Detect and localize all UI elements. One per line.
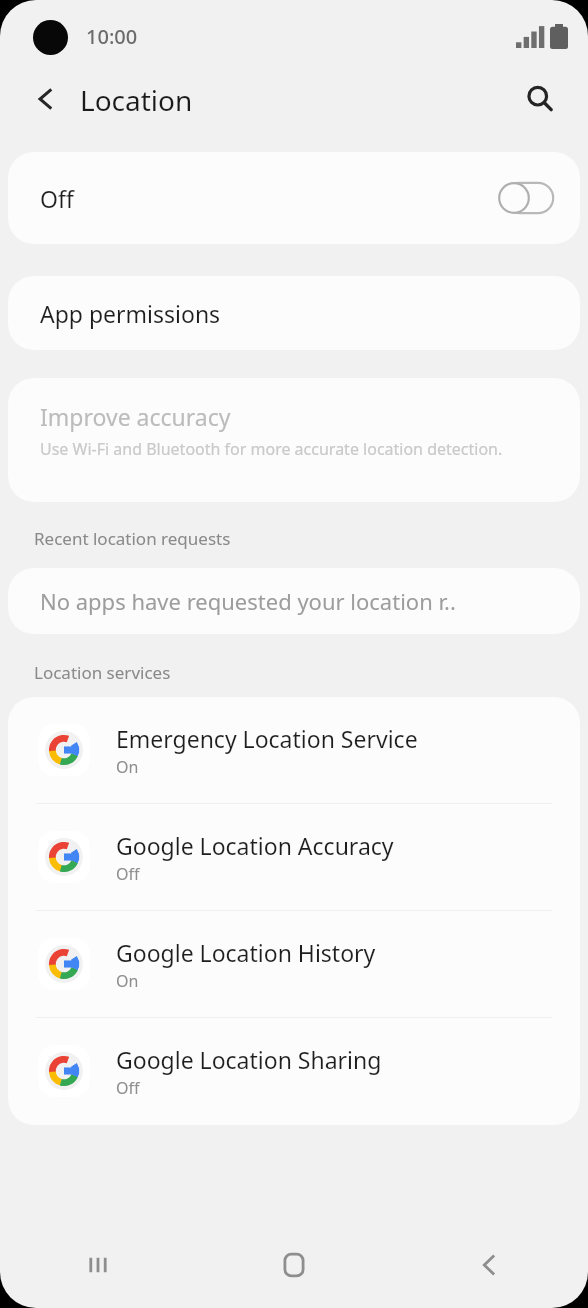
- staticText: App permissions: [40, 298, 221, 329]
- button[interactable]: Google Location Accuracy: [8, 804, 580, 910]
- button[interactable]: No apps have requested your location r..: [8, 568, 580, 634]
- staticText: Location: [80, 81, 193, 119]
- staticText: No apps have requested your location r..: [40, 586, 456, 616]
- staticText: On: [116, 756, 139, 778]
- staticText: Location services: [34, 661, 171, 684]
- staticText: Recent location requests: [34, 527, 231, 550]
- button[interactable]: Google Location History: [8, 911, 580, 1017]
- staticText: Off: [116, 1077, 140, 1099]
- button[interactable]: Home: [196, 1230, 392, 1308]
- staticText: Use Wi-Fi and Bluetooth for more accurat…: [40, 438, 503, 460]
- button[interactable]: Search: [512, 71, 568, 127]
- button[interactable]: Improve accuracy: [8, 378, 580, 502]
- staticText: Improve accuracy: [40, 401, 231, 432]
- staticText: Off: [40, 183, 74, 214]
- button[interactable]: Recents: [0, 1230, 196, 1308]
- button[interactable]: Emergency Location Service: [8, 697, 580, 803]
- button[interactable]: Back: [392, 1230, 588, 1308]
- staticText: Off: [116, 863, 140, 885]
- button[interactable]: Navigate up: [20, 73, 72, 125]
- staticText: Google Location Accuracy: [116, 830, 394, 861]
- button[interactable]: Location, off: [498, 182, 554, 214]
- staticText: On: [116, 970, 139, 992]
- button[interactable]: Off: [8, 152, 580, 244]
- staticText: Google Location History: [116, 937, 376, 968]
- button[interactable]: App permissions: [8, 276, 580, 350]
- staticText: 10:00: [86, 23, 138, 50]
- staticText: Emergency Location Service: [116, 723, 418, 754]
- staticText: Google Location Sharing: [116, 1044, 382, 1075]
- button[interactable]: Google Location Sharing: [8, 1018, 580, 1124]
